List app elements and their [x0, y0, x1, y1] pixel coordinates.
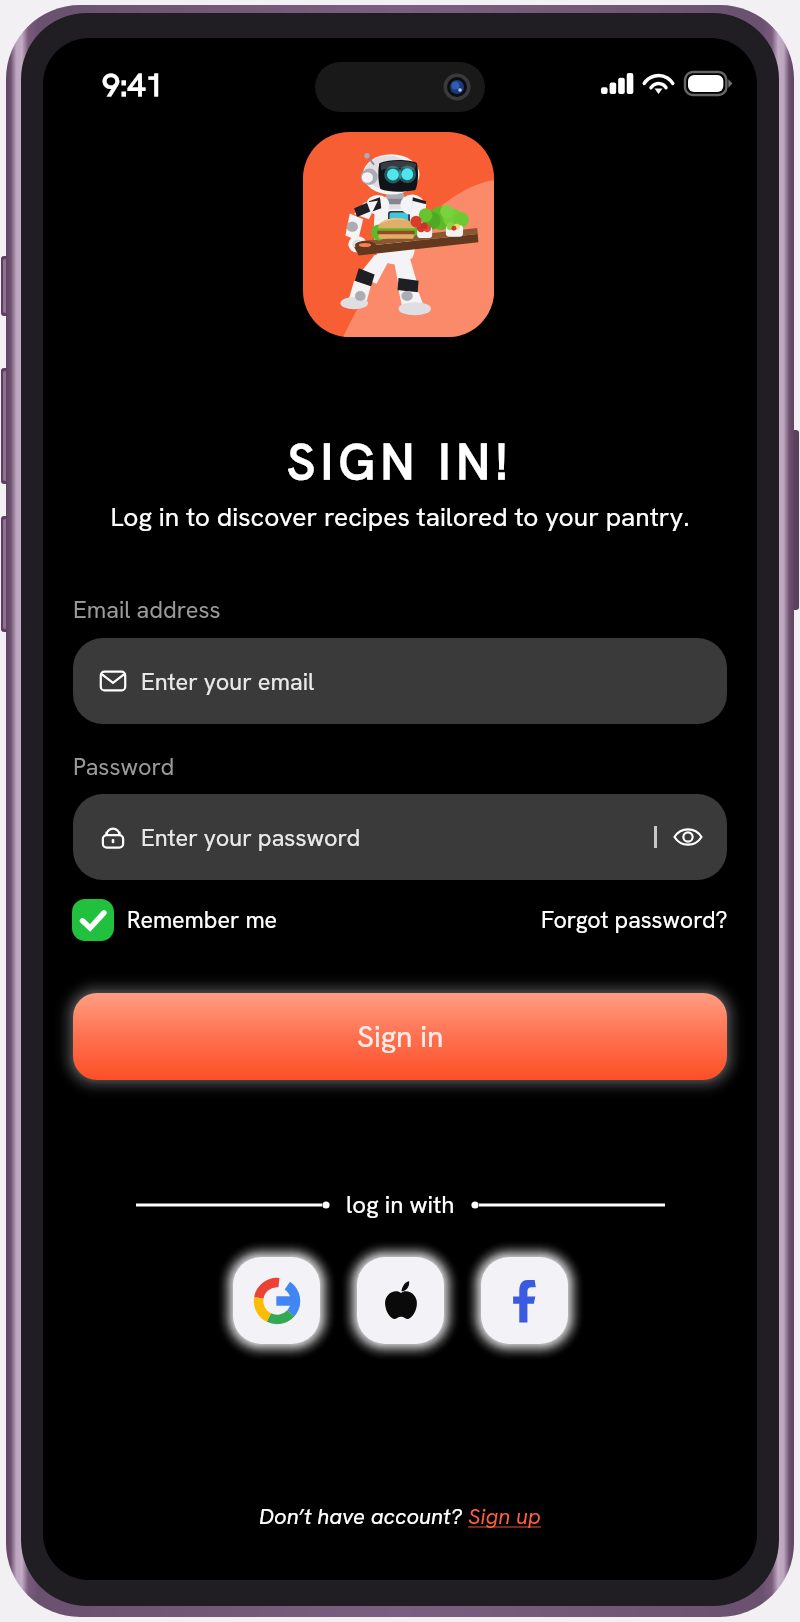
button[interactable]: Enter your email [73, 638, 727, 724]
staticText: Enter your email [141, 666, 315, 697]
staticText: Don’t have account? [259, 1502, 468, 1531]
staticText: 9:41 [102, 64, 164, 106]
button[interactable]: Sign in [73, 993, 727, 1080]
staticText: Remember me [127, 905, 278, 935]
button[interactable]: Remember me [72, 899, 278, 941]
button[interactable]: Enter your password [73, 794, 727, 880]
staticText: Log in to discover recipes tailored to y… [110, 500, 690, 534]
button[interactable]: Sign in with Google [233, 1257, 320, 1344]
staticText: Password [73, 751, 175, 782]
button[interactable]: Show password [673, 822, 703, 852]
staticText: Sign in [357, 1017, 444, 1056]
button[interactable]: Forgot password? [541, 905, 728, 935]
button[interactable]: Sign in with Facebook [481, 1257, 568, 1344]
button[interactable]: Sign up [468, 1502, 542, 1531]
staticText: Enter your password [141, 822, 361, 853]
staticText: SIGN IN! [287, 429, 513, 494]
button[interactable]: Sign in with Apple [357, 1257, 444, 1344]
staticText: Forgot password? [541, 905, 728, 935]
staticText: Sign up [468, 1502, 542, 1531]
staticText: Email address [73, 594, 221, 625]
staticText: log in with [346, 1189, 455, 1220]
